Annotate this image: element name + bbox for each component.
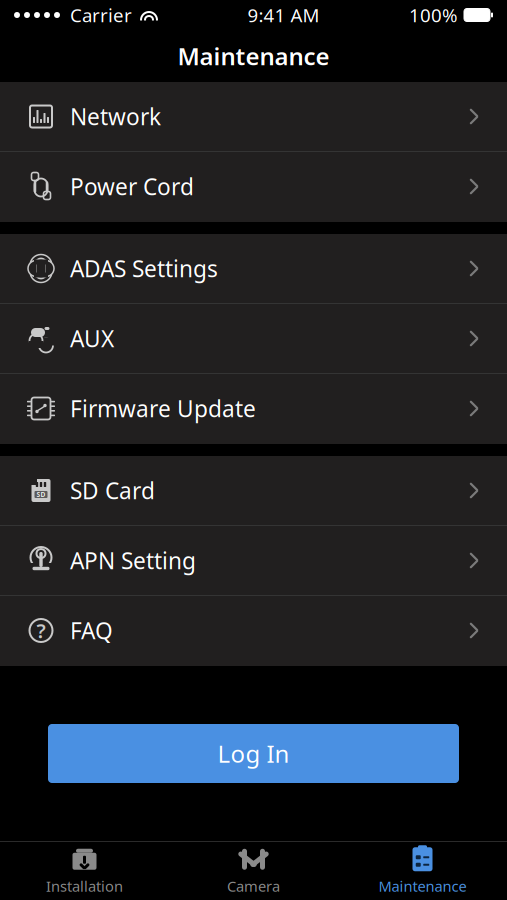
button[interactable]: AUX xyxy=(0,304,507,374)
staticText: Firmware Update xyxy=(70,393,256,423)
staticText: Carrier xyxy=(70,3,132,27)
button[interactable]: Maintenance xyxy=(338,840,507,900)
staticText: Network xyxy=(70,101,161,131)
button[interactable]: Camera xyxy=(169,840,338,900)
button[interactable]: SD xyxy=(0,456,507,526)
staticText: APN Setting xyxy=(70,545,196,575)
staticText: Maintenance xyxy=(378,876,466,896)
staticText: ? xyxy=(36,617,45,644)
staticText: Camera xyxy=(227,876,280,896)
staticText: 100% xyxy=(409,3,458,27)
staticText: Power Cord xyxy=(70,171,194,201)
staticText: FAQ xyxy=(70,615,113,645)
staticText: ADAS Settings xyxy=(70,253,218,283)
staticText: Log In xyxy=(217,738,289,769)
staticText: SD Card xyxy=(70,475,155,505)
staticText: 9:41 AM xyxy=(247,3,319,27)
button[interactable]: Installation xyxy=(0,840,169,900)
button[interactable]: Network xyxy=(0,82,507,152)
button[interactable]: Power Cord xyxy=(0,152,507,222)
staticText: Installation xyxy=(46,876,123,896)
staticText: Maintenance xyxy=(177,40,329,72)
button[interactable]: ADAS Settings xyxy=(0,234,507,304)
staticText: AUX xyxy=(70,323,114,353)
staticText: SD xyxy=(36,490,45,499)
button[interactable]: ? xyxy=(0,596,507,666)
button[interactable]: Log In xyxy=(48,724,459,783)
button[interactable]: Firmware Update xyxy=(0,374,507,444)
button[interactable]: APN Setting xyxy=(0,526,507,596)
